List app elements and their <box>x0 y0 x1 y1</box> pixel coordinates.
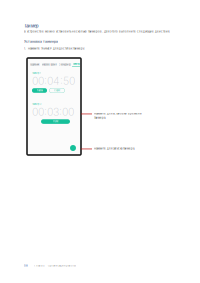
staticText: Секундомер <box>58 63 70 66</box>
staticText: Мировое время <box>41 63 56 66</box>
staticText: Таймер 1 <box>32 72 41 74</box>
staticText: В устройстве можно установить несколько … <box>24 30 170 33</box>
button[interactable]: Пуск <box>41 119 70 124</box>
staticText: Установка таймера <box>24 39 58 43</box>
button[interactable]: Таймер <box>71 62 80 67</box>
button[interactable]: Сброс <box>49 88 64 93</box>
staticText: Глава 5 Организация работы <box>34 264 76 267</box>
staticText: Пуск <box>53 120 58 123</box>
staticText: 1. Нажмите ТАЙМЕР для доступа к таймеру. <box>24 47 85 50</box>
staticText: Таймер 2 <box>32 103 41 105</box>
button[interactable]: Добавить таймер <box>70 145 76 151</box>
staticText: Пауза <box>36 89 42 92</box>
staticText: Таймер <box>24 23 39 28</box>
button[interactable]: Пауза <box>32 88 47 93</box>
staticText: таймера. <box>94 116 106 119</box>
staticText: Нажмите для запуска таймера. <box>94 147 135 150</box>
staticText: Таймер <box>72 62 79 65</box>
staticText: Нажмите для установки времени <box>94 112 142 115</box>
button[interactable]: Мировое время <box>40 63 57 66</box>
staticText: 58 <box>24 264 28 267</box>
staticText: 00:04:50 <box>32 74 75 87</box>
staticText: 00:03:00 <box>32 105 74 118</box>
staticText: Будильник <box>30 63 39 66</box>
button[interactable]: Будильник <box>29 63 40 66</box>
staticText: Сброс <box>54 89 60 92</box>
button[interactable]: Секундомер <box>57 63 71 66</box>
